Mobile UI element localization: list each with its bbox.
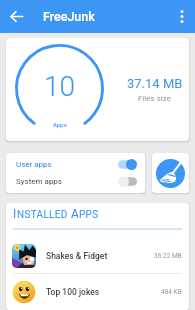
staticText: A	[71, 207, 79, 221]
staticText: Apps	[53, 121, 67, 128]
staticText: 484 KB	[161, 288, 182, 296]
staticText: FreeJunk	[43, 9, 95, 24]
button[interactable]: More options	[168, 0, 195, 33]
button[interactable]: System apps	[16, 176, 137, 187]
staticText: PPS	[79, 209, 99, 221]
button[interactable]: User apps	[16, 159, 137, 170]
staticText: I	[13, 207, 17, 221]
staticText: Shakes & Fidget	[46, 251, 108, 261]
button[interactable]: Back	[0, 0, 33, 33]
staticText: 37.14 MB	[127, 76, 183, 91]
staticText: NSTALLED	[17, 209, 71, 221]
staticText: User apps	[16, 160, 52, 169]
button[interactable]: Top 100 jokes	[6, 274, 189, 309]
staticText: 36.22 MB	[154, 252, 182, 260]
staticText: Top 100 jokes	[46, 287, 100, 297]
staticText: Files size	[138, 94, 171, 103]
staticText: 10	[44, 70, 76, 103]
staticText: System apps	[16, 177, 62, 186]
button[interactable]: Clean	[152, 153, 189, 193]
button[interactable]: Shakes & Fidget	[6, 238, 189, 273]
